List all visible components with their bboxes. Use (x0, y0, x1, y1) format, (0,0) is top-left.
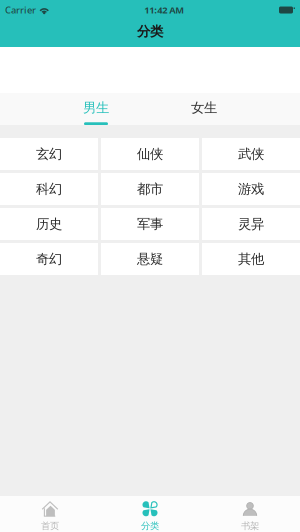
button[interactable]: 书架 (200, 496, 300, 532)
staticText: 女生 (191, 100, 217, 116)
staticText: 仙侠 (137, 146, 163, 162)
button[interactable]: 军事 (101, 208, 199, 240)
staticText: 男生 (83, 100, 109, 116)
button[interactable]: 都市 (101, 173, 199, 205)
staticText: 武侠 (238, 146, 264, 162)
staticText: 灵异 (238, 216, 264, 232)
button[interactable]: 玄幻 (0, 138, 98, 170)
staticText: 11:42 AM (144, 4, 184, 16)
staticText: 历史 (36, 216, 62, 232)
button[interactable]: 武侠 (202, 138, 300, 170)
staticText: 其他 (238, 251, 264, 267)
staticText: 游戏 (238, 181, 264, 197)
staticText: 军事 (137, 216, 163, 232)
staticText: 都市 (137, 181, 163, 197)
button[interactable]: 悬疑 (101, 243, 199, 275)
staticText: 分类 (137, 23, 163, 40)
button[interactable]: 科幻 (0, 173, 98, 205)
staticText: 奇幻 (36, 251, 62, 267)
button[interactable]: 灵异 (202, 208, 300, 240)
staticText: 玄幻 (36, 146, 62, 162)
button[interactable]: 分类 (100, 496, 200, 532)
button[interactable]: 首页 (0, 496, 100, 532)
button[interactable]: 游戏 (202, 173, 300, 205)
staticText: 分类 (141, 520, 159, 532)
button[interactable]: 其他 (202, 243, 300, 275)
button[interactable]: 奇幻 (0, 243, 98, 275)
button[interactable]: 仙侠 (101, 138, 199, 170)
button[interactable]: 男生 (42, 93, 150, 125)
staticText: 书架 (241, 520, 259, 532)
staticText: 首页 (41, 520, 59, 532)
staticText: Carrier (5, 4, 36, 16)
staticText: 科幻 (36, 181, 62, 197)
button[interactable]: 女生 (150, 93, 258, 125)
button[interactable]: 历史 (0, 208, 98, 240)
staticText: 悬疑 (137, 251, 163, 267)
